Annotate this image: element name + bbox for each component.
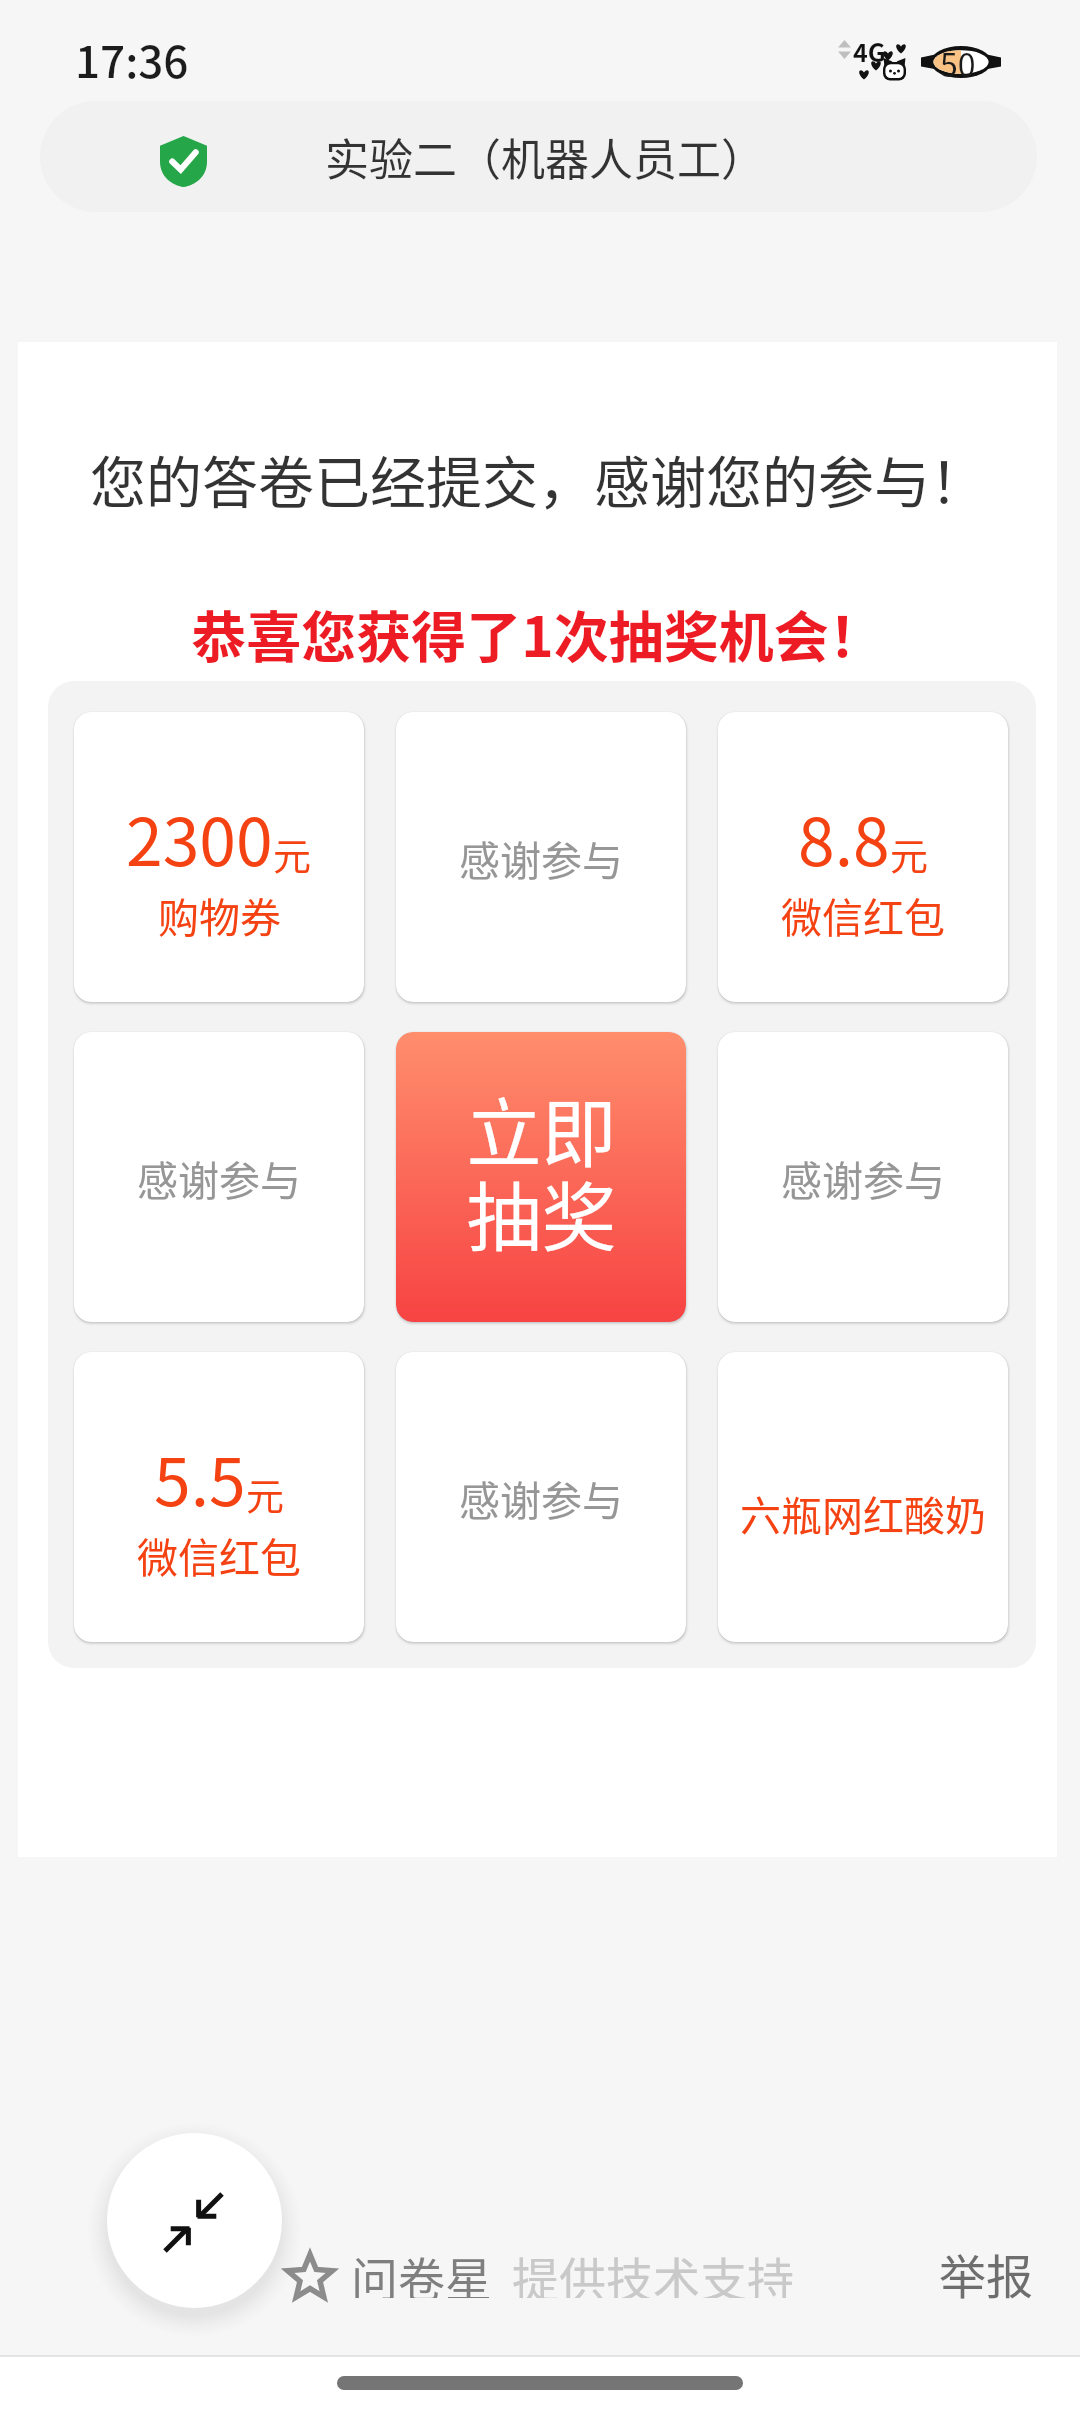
staticText: 提供技术支持 bbox=[512, 2242, 794, 2298]
staticText: 购物券 bbox=[158, 885, 281, 944]
staticText: 感谢参与 bbox=[459, 828, 623, 887]
staticText: 2300 bbox=[126, 789, 273, 885]
staticText: 实验二（机器人员工） bbox=[325, 125, 765, 189]
button[interactable]: 立即 抽奖 bbox=[396, 1032, 686, 1322]
button[interactable]: 六瓶网红酸奶 bbox=[718, 1352, 1008, 1642]
staticText: 感谢参与 bbox=[459, 1468, 623, 1527]
button[interactable]: 感谢参与 bbox=[396, 712, 686, 1002]
staticText: 8.8 bbox=[798, 789, 890, 885]
button[interactable]: 感谢参与 bbox=[74, 1032, 364, 1322]
staticText: 六瓶网红酸奶 bbox=[740, 1483, 986, 1542]
staticText: 您的答卷已经提交，感谢您的参与！ bbox=[90, 438, 986, 519]
staticText: 50 bbox=[940, 40, 976, 86]
button[interactable]: 8.8 bbox=[718, 712, 1008, 1002]
staticText: 举报 bbox=[939, 2239, 1033, 2305]
staticText: 微信红包 bbox=[137, 1525, 301, 1584]
staticText: 元 bbox=[890, 826, 929, 881]
staticText: 元 bbox=[246, 1466, 285, 1521]
button[interactable]: Resize bbox=[107, 2133, 282, 2308]
staticText: 微信红包 bbox=[781, 885, 945, 944]
staticText: 问卷星 bbox=[351, 2242, 492, 2298]
staticText: 4G bbox=[853, 33, 886, 69]
button[interactable]: 感谢参与 bbox=[718, 1032, 1008, 1322]
staticText: 元 bbox=[273, 826, 312, 881]
button[interactable]: 问卷星 bbox=[283, 2243, 794, 2299]
button[interactable]: 感谢参与 bbox=[396, 1352, 686, 1642]
button[interactable]: 举报 bbox=[925, 2239, 1047, 2305]
button[interactable]: 2300 bbox=[74, 712, 364, 1002]
staticText: 17:36 bbox=[75, 27, 189, 91]
button[interactable]: 实验二（机器人员工） bbox=[40, 101, 1037, 212]
staticText: 恭喜您获得了1次抽奖机会！ bbox=[191, 593, 884, 673]
staticText: 5.5 bbox=[154, 1429, 246, 1525]
button[interactable]: 5.5 bbox=[74, 1352, 364, 1642]
staticText: 感谢参与 bbox=[137, 1148, 301, 1207]
staticText: 感谢参与 bbox=[781, 1148, 945, 1207]
staticText: 立即 抽奖 bbox=[466, 1074, 617, 1267]
